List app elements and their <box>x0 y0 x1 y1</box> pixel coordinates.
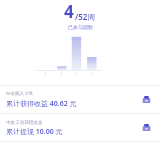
staticText: 已参与期数 <box>68 24 93 30</box>
staticText: /52周 <box>75 11 96 22</box>
staticText: 累计获得收益 40.62 元 <box>6 99 77 109</box>
staticText: 白名额入３笔 <box>6 91 33 97</box>
button[interactable]: 提现详情 <box>140 121 153 134</box>
button[interactable]: 收益详情 <box>140 93 153 106</box>
staticText: 4 <box>64 0 74 23</box>
staticText: 累计提现 10.00 元 <box>6 127 63 137</box>
button[interactable]: 白名额入３笔 <box>0 86 160 113</box>
button[interactable]: 中奖 2 次获得奖金 <box>0 114 160 141</box>
staticText: 中奖 2 次获得奖金 <box>6 119 43 125</box>
